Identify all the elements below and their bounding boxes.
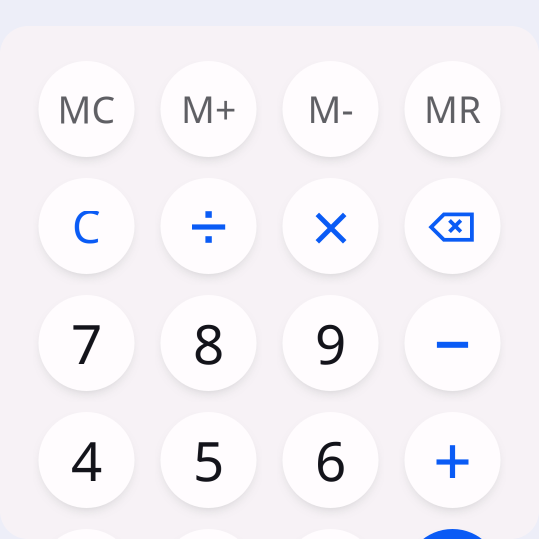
button[interactable]: M+ <box>160 61 256 157</box>
button[interactable]: 3 <box>282 529 378 539</box>
button[interactable]: MR <box>404 61 500 157</box>
staticText: 6 <box>315 424 346 496</box>
staticText: MC <box>57 84 115 134</box>
button[interactable]: 4 <box>38 412 134 508</box>
button[interactable]: Plus <box>404 412 500 508</box>
button[interactable]: Delete <box>404 178 500 274</box>
button[interactable]: M- <box>282 61 378 157</box>
button[interactable]: 5 <box>160 412 256 508</box>
button[interactable]: C <box>38 178 134 274</box>
staticText: 4 <box>71 424 102 496</box>
staticText: 9 <box>315 307 346 379</box>
staticText: 7 <box>71 307 102 379</box>
button[interactable]: Minus <box>404 295 500 391</box>
button[interactable]: 2 <box>160 529 256 539</box>
button[interactable]: Equals <box>404 529 500 539</box>
button[interactable]: Multiply <box>282 178 378 274</box>
button[interactable]: 6 <box>282 412 378 508</box>
button[interactable]: 8 <box>160 295 256 391</box>
staticText: MR <box>424 84 481 134</box>
button[interactable]: 9 <box>282 295 378 391</box>
staticText: C <box>72 196 101 256</box>
button[interactable]: 1 <box>38 529 134 539</box>
button[interactable]: MC <box>38 61 134 157</box>
staticText: M- <box>307 84 353 134</box>
button[interactable]: 7 <box>38 295 134 391</box>
staticText: M+ <box>181 84 236 134</box>
button[interactable]: Divide <box>160 178 256 274</box>
staticText: 8 <box>193 307 224 379</box>
staticText: 5 <box>193 424 224 496</box>
